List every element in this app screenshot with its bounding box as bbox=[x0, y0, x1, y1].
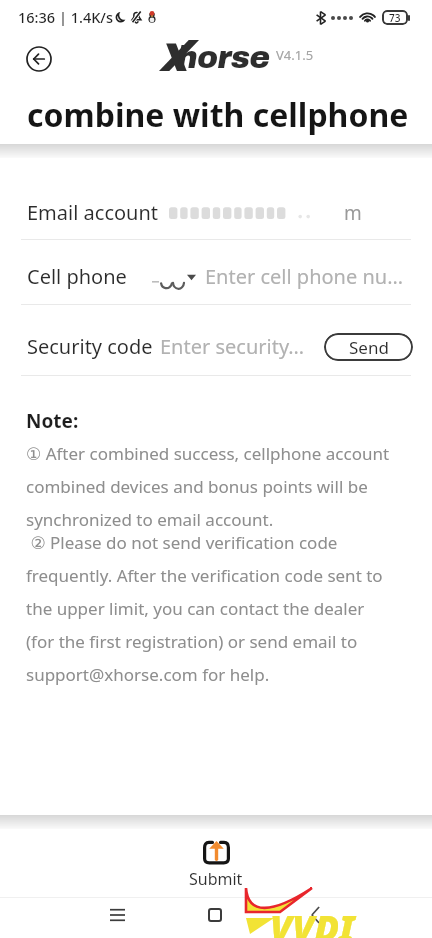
button[interactable]: Submit bbox=[189, 840, 243, 890]
staticText: VVDI bbox=[270, 903, 355, 938]
staticText: Enter security… bbox=[160, 333, 305, 360]
button[interactable]: Send bbox=[324, 333, 413, 361]
staticText: horse bbox=[177, 41, 270, 75]
button[interactable]: Back bbox=[295, 895, 335, 935]
staticText: combine with cellphone bbox=[27, 93, 409, 137]
staticText: Email account bbox=[27, 199, 159, 226]
staticText: Submit bbox=[189, 868, 243, 890]
button[interactable]: Country code bbox=[151, 267, 196, 287]
staticText: ② Please do not send verification code f… bbox=[26, 531, 396, 686]
staticText: 16:36 | 1.4K/s bbox=[18, 7, 113, 27]
staticText: Cell phone bbox=[27, 263, 127, 290]
staticText: V4.1.5 bbox=[276, 46, 314, 64]
button[interactable]: Home bbox=[195, 895, 235, 935]
staticText: ① After combined success, cellphone acco… bbox=[26, 442, 396, 531]
button[interactable]: Back bbox=[26, 46, 52, 72]
staticText: m bbox=[344, 200, 362, 226]
staticText: Send bbox=[349, 336, 389, 359]
staticText: Enter cell phone nu… bbox=[205, 263, 403, 290]
staticText: Security code bbox=[27, 333, 153, 360]
staticText: 73 bbox=[389, 11, 401, 25]
button[interactable]: Recent apps bbox=[97, 895, 137, 935]
staticText: Note: bbox=[26, 408, 79, 434]
